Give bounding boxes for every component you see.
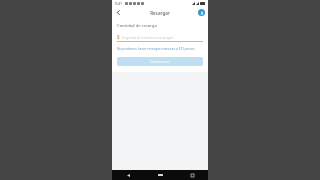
staticText: $: [117, 34, 120, 40]
staticText: No podemos hacer recargas menores a $10 …: [117, 46, 195, 50]
button[interactable]: Home: [156, 171, 164, 179]
staticText: Ingresa el monto a recargar: [122, 35, 173, 40]
button[interactable]: Recent apps: [188, 171, 196, 179]
staticText: Cantidad de recarga: [117, 23, 157, 29]
staticText: Recargar: [150, 10, 170, 16]
button[interactable]: Continuar: [117, 57, 203, 66]
staticText: 9:41: [115, 1, 122, 6]
button[interactable]: $: [117, 33, 203, 41]
button[interactable]: Profile: [198, 9, 205, 16]
button[interactable]: Back: [124, 171, 132, 179]
staticText: Continuar: [150, 59, 170, 64]
button[interactable]: Back: [114, 8, 123, 17]
